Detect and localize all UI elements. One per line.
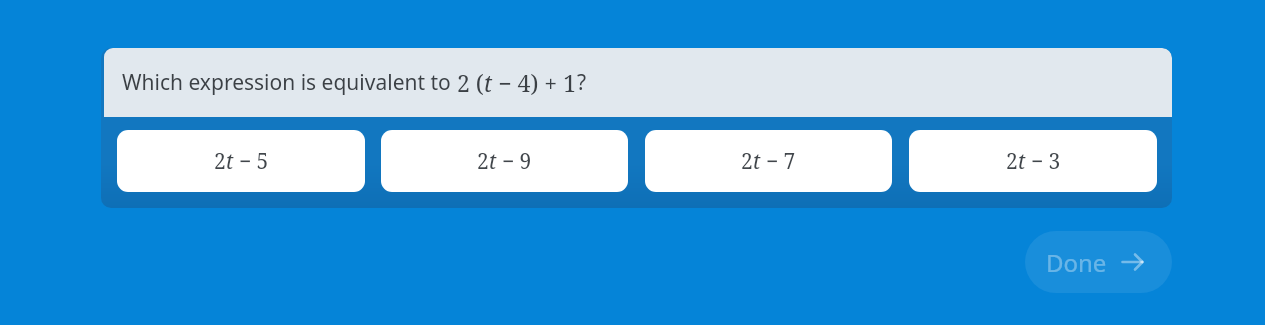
staticText: 2t − 3: [1006, 147, 1061, 176]
staticText: ?: [577, 68, 587, 97]
button[interactable]: Done: [1025, 231, 1172, 293]
staticText: Done: [1046, 246, 1107, 279]
button[interactable]: 2t − 7: [645, 130, 892, 192]
button[interactable]: 2t − 3: [909, 130, 1157, 192]
staticText: Which expression is equivalent to: [122, 68, 457, 97]
other: Next: [1121, 250, 1145, 274]
staticText: 2t − 7: [741, 147, 796, 176]
staticText: 2 (t − 4) + 1: [457, 67, 577, 98]
button[interactable]: 2t − 5: [117, 130, 365, 192]
staticText: 2t − 5: [214, 147, 269, 176]
staticText: 2t − 9: [477, 147, 532, 176]
button[interactable]: 2t − 9: [381, 130, 628, 192]
